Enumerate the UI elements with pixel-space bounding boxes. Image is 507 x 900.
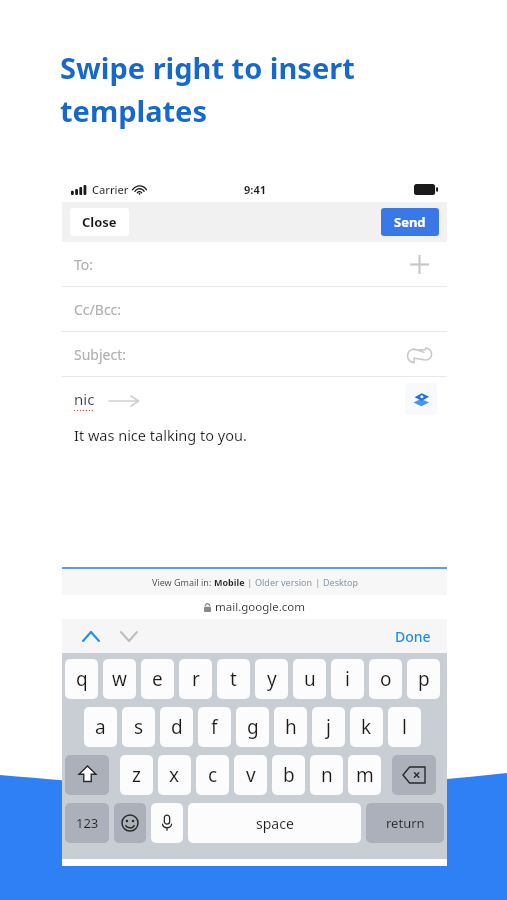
staticText: z	[132, 762, 141, 788]
button[interactable]: h	[274, 707, 307, 747]
button[interactable]: s	[122, 707, 155, 747]
staticText: i	[345, 666, 350, 692]
staticText: p	[418, 666, 430, 692]
button[interactable]: nic	[62, 377, 447, 567]
staticText: Send	[394, 213, 426, 231]
staticText: q	[76, 666, 88, 692]
staticText: Cc/Bcc:	[74, 300, 122, 319]
staticText: h	[285, 714, 297, 740]
button[interactable]: c	[196, 755, 229, 795]
staticText: e	[152, 666, 163, 692]
button[interactable]: t	[217, 659, 250, 699]
staticText: View Gmail in:	[152, 576, 214, 588]
staticText: b	[283, 762, 295, 788]
button[interactable]: space	[188, 803, 361, 843]
staticText: a	[95, 714, 106, 740]
staticText: x	[169, 762, 180, 788]
button[interactable]: n	[310, 755, 343, 795]
staticText: Subject:	[74, 345, 126, 364]
button[interactable]: w	[103, 659, 136, 699]
staticText: m	[356, 762, 374, 788]
button[interactable]: m	[348, 755, 381, 795]
staticText: Close	[82, 213, 117, 231]
button[interactable]: mail.google.com	[62, 595, 447, 619]
button[interactable]: a	[84, 707, 117, 747]
staticText: mail.google.com	[215, 599, 306, 615]
staticText: templates	[60, 91, 207, 130]
button[interactable]: j	[312, 707, 345, 747]
button[interactable]: y	[255, 659, 288, 699]
staticText: k	[361, 714, 372, 740]
button[interactable]: Backspace	[392, 755, 436, 795]
button[interactable]: d	[160, 707, 193, 747]
staticText: 123	[76, 814, 99, 832]
staticText: o	[380, 666, 392, 692]
button[interactable]: f	[198, 707, 231, 747]
button[interactable]: Subject:	[62, 332, 447, 376]
staticText: return	[386, 814, 425, 832]
button[interactable]: Mobile	[214, 576, 245, 588]
staticText: w	[112, 666, 127, 692]
button[interactable]: Close	[70, 208, 129, 236]
button[interactable]: l	[388, 707, 421, 747]
button[interactable]: Add recipient	[405, 250, 433, 278]
staticText: space	[256, 814, 294, 833]
button[interactable]: 123	[65, 803, 109, 843]
button[interactable]: q	[65, 659, 98, 699]
button[interactable]: return	[366, 803, 444, 843]
button[interactable]: Next field	[114, 621, 144, 651]
staticText: y	[267, 666, 277, 692]
staticText: j	[326, 714, 331, 740]
button[interactable]: b	[272, 755, 305, 795]
button[interactable]: o	[369, 659, 402, 699]
button[interactable]: x	[158, 755, 191, 795]
staticText: Swipe right to insert	[60, 48, 355, 87]
button[interactable]: k	[350, 707, 383, 747]
staticText: c	[208, 762, 218, 788]
button[interactable]: v	[234, 755, 267, 795]
button[interactable]: g	[236, 707, 269, 747]
staticText: |	[245, 576, 255, 588]
button[interactable]: Done	[379, 621, 447, 652]
staticText: nic	[74, 389, 95, 409]
staticText: Done	[395, 627, 431, 646]
staticText: r	[192, 666, 200, 692]
button[interactable]: i	[331, 659, 364, 699]
button[interactable]: Shift	[65, 755, 109, 795]
button[interactable]: Send	[381, 208, 439, 236]
button[interactable]: Emoji	[114, 803, 146, 843]
staticText: 9:41	[244, 182, 266, 197]
button[interactable]: z	[120, 755, 153, 795]
button[interactable]: Desktop	[323, 576, 358, 588]
button[interactable]: Attach file	[405, 340, 433, 368]
staticText: n	[321, 762, 333, 788]
staticText: t	[230, 666, 237, 692]
button[interactable]: Previous field	[76, 621, 106, 651]
button[interactable]: u	[293, 659, 326, 699]
button[interactable]: To:	[62, 242, 447, 286]
button[interactable]: p	[407, 659, 440, 699]
staticText: |	[313, 576, 323, 588]
button[interactable]: e	[141, 659, 174, 699]
staticText: u	[304, 666, 316, 692]
staticText: s	[134, 714, 144, 740]
button[interactable]: Dictate	[151, 803, 183, 843]
staticText: It was nice talking to you.	[74, 425, 247, 445]
staticText: To:	[74, 255, 94, 274]
staticText: f	[211, 714, 218, 740]
button[interactable]: r	[179, 659, 212, 699]
staticText: v	[246, 762, 256, 788]
button[interactable]: Cc/Bcc:	[62, 287, 447, 331]
staticText: l	[402, 714, 407, 740]
button[interactable]: Older version	[255, 576, 313, 588]
button[interactable]: Insert template	[405, 383, 437, 415]
staticText: Carrier	[92, 182, 129, 197]
staticText: d	[171, 714, 183, 740]
staticText: g	[247, 714, 259, 740]
